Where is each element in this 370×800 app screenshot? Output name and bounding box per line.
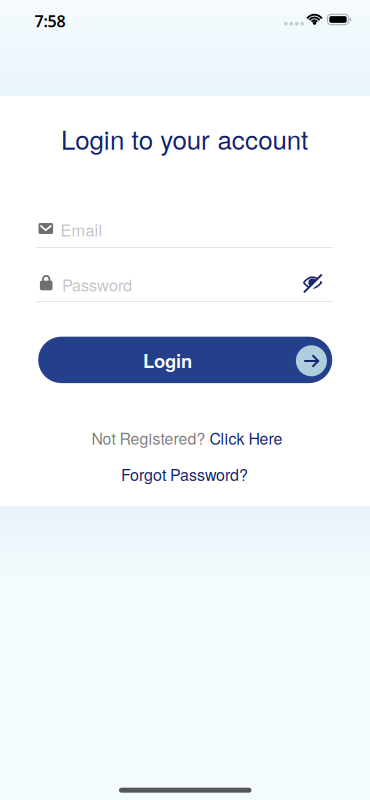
button[interactable]: Email [36, 213, 333, 249]
staticText: Click Here [209, 426, 282, 449]
button[interactable]: Password [36, 269, 333, 305]
staticText: Login to your account [61, 120, 308, 157]
staticText: Login [143, 347, 192, 374]
button[interactable]: Click Here [209, 426, 282, 449]
staticText: 7:58 [34, 10, 65, 32]
staticText: Not Registered? [91, 426, 209, 449]
staticText: Forgot Password? [121, 462, 248, 485]
button[interactable]: Show password [295, 266, 329, 300]
button[interactable]: Forgot Password? [121, 462, 248, 485]
staticText: Password [62, 273, 132, 296]
button[interactable]: Login [38, 337, 332, 383]
staticText: Email [60, 218, 102, 241]
